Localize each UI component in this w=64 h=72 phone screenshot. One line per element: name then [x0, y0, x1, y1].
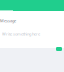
- button[interactable]: Send: [56, 47, 62, 51]
- staticText: Write something here: [2, 31, 40, 37]
- staticText: Message: [0, 18, 16, 23]
